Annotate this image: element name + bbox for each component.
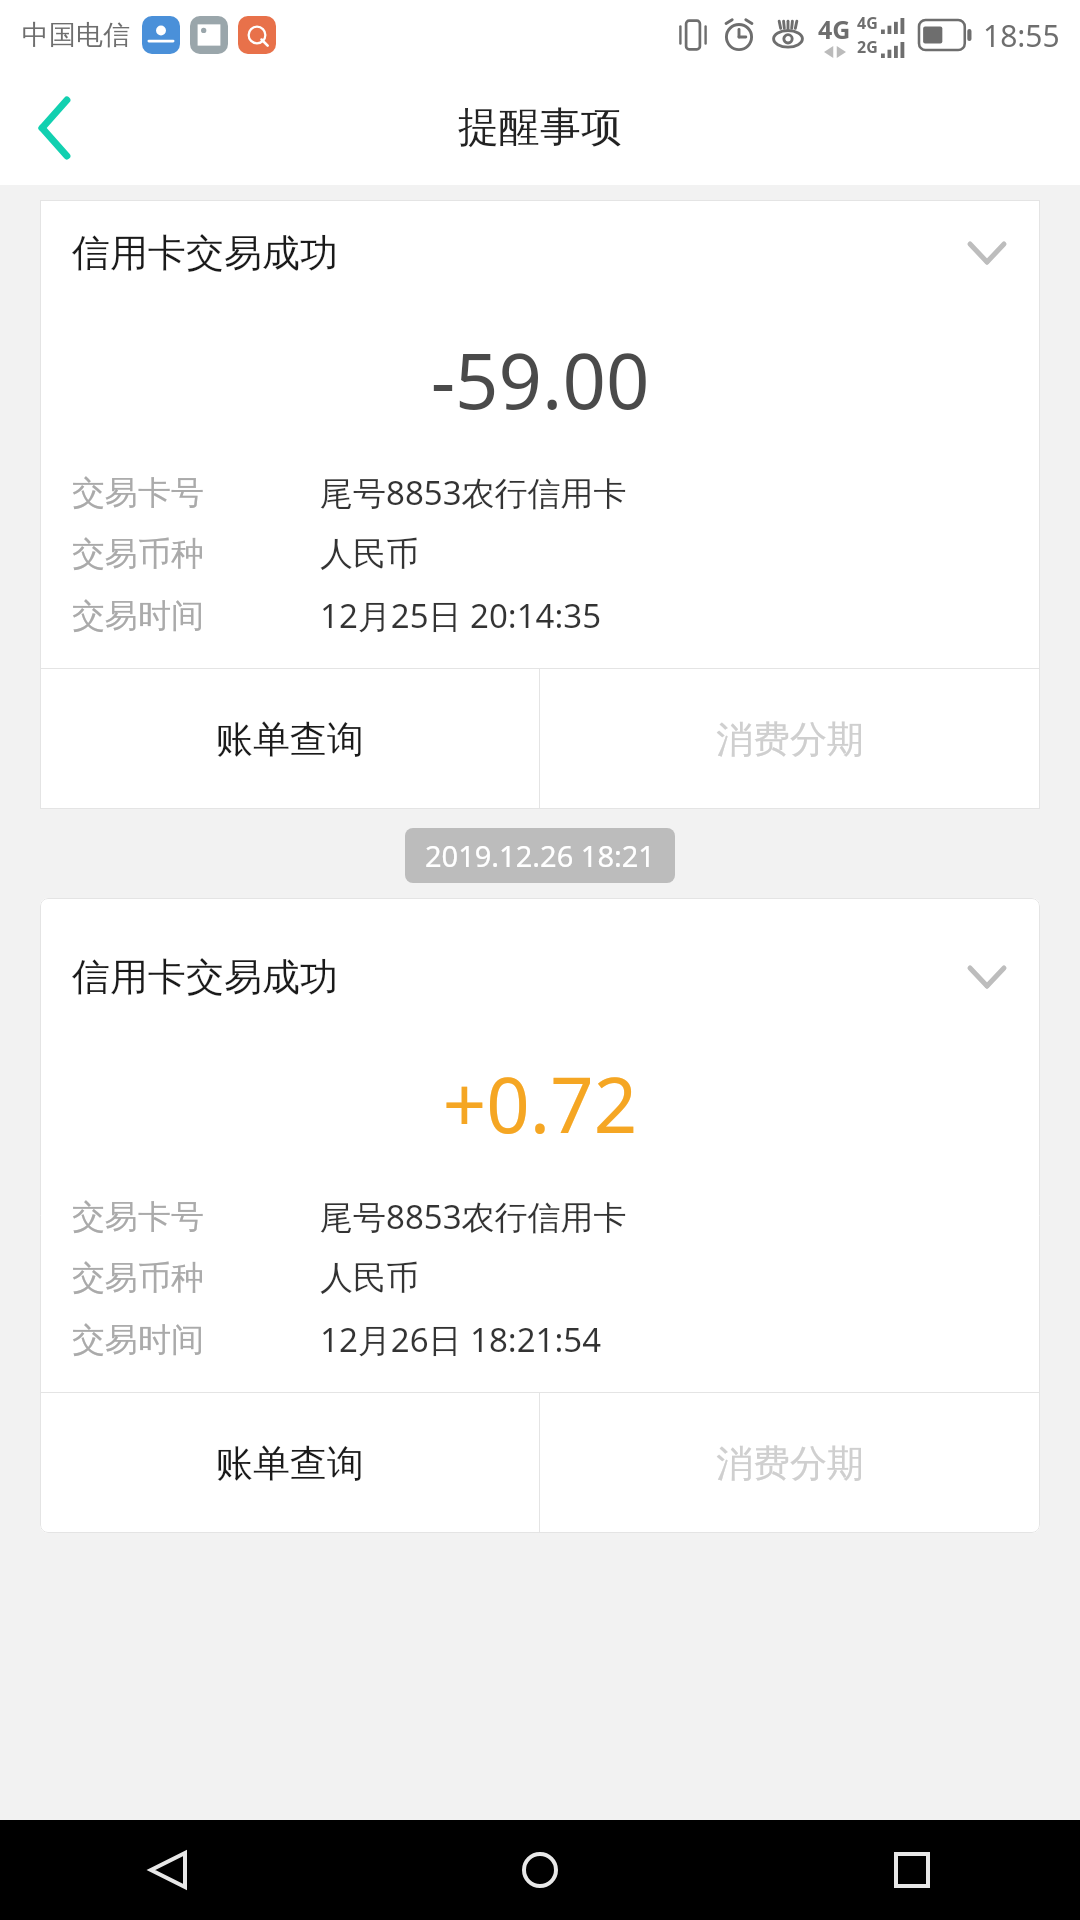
staticText: 交易卡号 [72,1196,320,1238]
staticText: 2G [857,36,878,58]
staticText: 交易币种 [72,1257,320,1299]
staticText: 账单查询 [216,716,364,763]
staticText: 人民币 [320,1257,419,1299]
button[interactable]: Back [0,73,110,183]
button[interactable]: Collapse [952,942,1022,1012]
staticText: 交易时间 [72,595,320,637]
staticText: +0.72 [40,1052,1040,1156]
staticText: 交易时间 [72,1319,320,1361]
staticText: 4G [818,12,851,46]
staticText: 4G [857,12,878,34]
staticText: 18:55 [983,15,1060,56]
staticText: 尾号8853农行信用卡 [320,470,627,515]
button[interactable]: Back [120,1822,216,1918]
button[interactable]: 账单查询 [40,669,539,809]
button[interactable]: 消费分期 [540,669,1040,809]
staticText: 中国电信 [22,18,130,52]
button[interactable]: 账单查询 [40,1393,539,1533]
button[interactable]: Recents [864,1822,960,1918]
staticText: 交易卡号 [72,472,320,514]
staticText: -59.00 [40,328,1040,432]
staticText: 账单查询 [216,1440,364,1487]
button[interactable]: 消费分期 [540,1393,1040,1533]
staticText: 交易币种 [72,533,320,575]
staticText: 12月25日 20:14:35 [320,593,602,638]
staticText: 2019.12.26 18:21 [425,836,655,875]
staticText: 消费分期 [716,716,864,763]
staticText: 提醒事项 [458,102,622,154]
staticText: 12月26日 18:21:54 [320,1317,602,1362]
button[interactable]: Collapse [952,218,1022,288]
staticText: 尾号8853农行信用卡 [320,1194,627,1239]
button[interactable]: 信用卡交易成功 [40,200,1040,809]
staticText: 人民币 [320,533,419,575]
button[interactable]: Home [492,1822,588,1918]
staticText: 消费分期 [716,1440,864,1487]
button[interactable]: 信用卡交易成功 [40,898,1040,1533]
staticText: 信用卡交易成功 [72,229,338,277]
staticText: 信用卡交易成功 [72,953,338,1001]
